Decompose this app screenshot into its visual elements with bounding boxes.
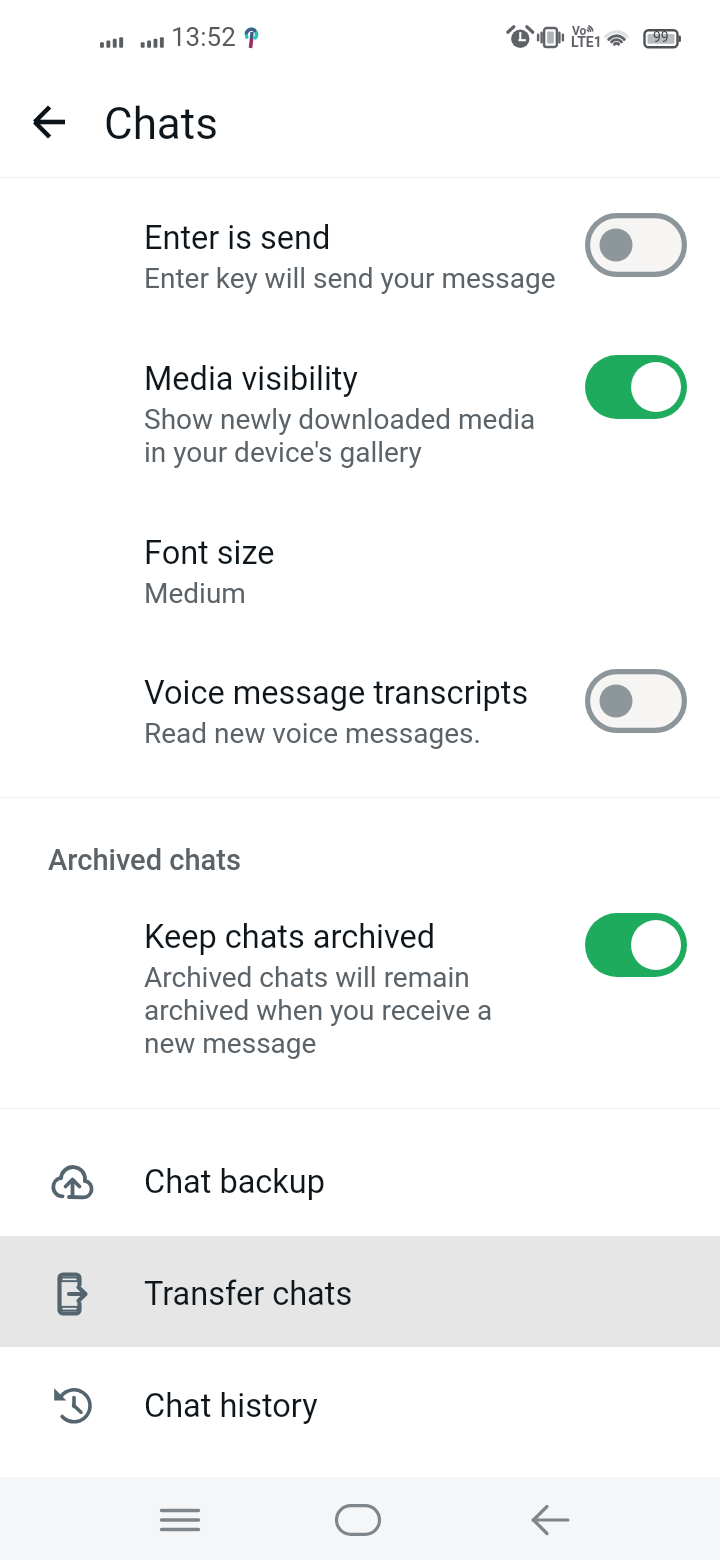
staticText: Archived chats xyxy=(48,843,241,877)
button[interactable] xyxy=(0,632,720,797)
button[interactable]: On xyxy=(585,355,687,419)
button[interactable]: Off xyxy=(585,669,687,733)
staticText: Read new voice messages. xyxy=(144,717,481,750)
staticText: Enter key will send your message xyxy=(144,262,556,295)
staticText: Font size xyxy=(144,534,275,572)
staticText: Voice message transcripts xyxy=(144,674,529,712)
button[interactable]: Recent apps xyxy=(150,1490,210,1550)
button[interactable]: Back xyxy=(520,1490,580,1550)
staticText: Show newly downloaded media in your devi… xyxy=(144,403,536,469)
staticText: Vo xyxy=(572,24,587,38)
staticText: Chats xyxy=(104,98,218,150)
staticText: Medium xyxy=(144,577,246,610)
staticText: Chat history xyxy=(144,1387,318,1425)
button[interactable]: Home xyxy=(328,1490,388,1550)
staticText: Enter is send xyxy=(144,219,331,257)
button[interactable] xyxy=(0,178,720,318)
button[interactable] xyxy=(0,318,720,492)
staticText: LTE1 xyxy=(571,34,602,50)
button[interactable]: Off xyxy=(585,213,687,277)
staticText: 99 xyxy=(653,29,669,45)
staticText: Keep chats archived xyxy=(144,918,436,956)
button[interactable]: Transfer chats xyxy=(0,1238,720,1350)
button[interactable]: Back xyxy=(15,88,83,156)
button[interactable] xyxy=(0,880,720,1108)
button[interactable]: Chat history xyxy=(0,1350,720,1462)
staticText: Media visibility xyxy=(144,360,358,398)
staticText: Archived chats will remain archived when… xyxy=(144,961,493,1060)
staticText: 13:52 xyxy=(171,22,236,52)
staticText: Transfer chats xyxy=(144,1275,353,1313)
button[interactable] xyxy=(0,492,720,632)
button[interactable]: On xyxy=(585,913,687,977)
button[interactable]: Chat backup xyxy=(0,1126,720,1238)
staticText: Chat backup xyxy=(144,1163,326,1201)
